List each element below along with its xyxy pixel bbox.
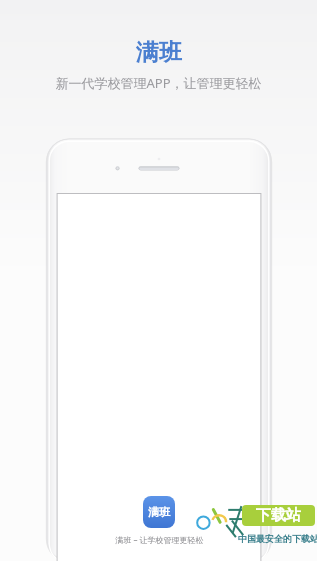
button[interactable]: 满班 app icon xyxy=(143,496,175,528)
staticText: 下载站 xyxy=(256,506,301,525)
staticText: 满班 xyxy=(148,505,170,519)
button[interactable]: 下载站 xyxy=(242,505,315,526)
button[interactable]: 满班 app icon xyxy=(90,496,228,545)
staticText: 满班 xyxy=(136,38,182,67)
staticText: 新一代学校管理APP，让管理更轻松 xyxy=(55,74,262,92)
staticText: 中国最安全的下载站 xyxy=(238,533,317,544)
staticText: 满班 – 让学校管理更轻松 xyxy=(115,534,204,545)
